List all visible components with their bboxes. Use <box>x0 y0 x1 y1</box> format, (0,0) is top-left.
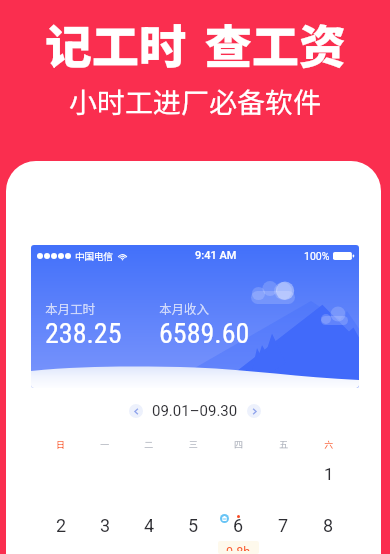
staticText: 6 <box>233 515 244 536</box>
staticText: 本月收入 <box>159 299 210 317</box>
staticText: 5 <box>188 515 199 536</box>
staticText: 4 <box>144 515 155 536</box>
staticText: 238.25 <box>45 317 122 350</box>
staticText: 日 <box>56 438 66 451</box>
staticText: 1 <box>324 464 334 484</box>
staticText: 三 <box>189 438 199 451</box>
button[interactable]: 4 <box>144 515 155 536</box>
staticText: 本月工时 <box>45 299 96 317</box>
staticText: 9:41 AM <box>195 249 237 262</box>
staticText: 100% <box>304 250 330 262</box>
staticText: 六 <box>324 438 334 451</box>
button[interactable]: 7 <box>278 515 289 536</box>
staticText: 6589.60 <box>159 317 250 350</box>
staticText: 7 <box>278 515 289 536</box>
staticText: 0.8h <box>226 544 251 551</box>
button[interactable]: 3 <box>100 515 111 536</box>
staticText: 中国电信 <box>75 249 114 263</box>
staticText: 查工资 <box>205 9 346 77</box>
other: 0.8 hours logged <box>226 544 251 551</box>
button[interactable]: 5 <box>188 515 199 536</box>
staticText: 2 <box>56 515 67 536</box>
staticText: 四 <box>234 438 244 451</box>
staticText: 一 <box>100 438 110 451</box>
staticText: 五 <box>279 438 289 451</box>
button[interactable]: 2 <box>56 515 67 536</box>
staticText: 8 <box>323 515 334 536</box>
button[interactable]: Next period <box>247 404 261 418</box>
button[interactable]: 6 <box>218 515 259 554</box>
staticText: 小时工进厂必备软件 <box>69 81 322 122</box>
button[interactable]: 8 <box>323 515 334 536</box>
staticText: 二 <box>144 438 154 451</box>
staticText: 3 <box>100 515 111 536</box>
button[interactable]: Previous period <box>129 404 143 418</box>
staticText: 记工时 <box>45 9 186 77</box>
staticText: 09.01–09.30 <box>152 402 238 420</box>
